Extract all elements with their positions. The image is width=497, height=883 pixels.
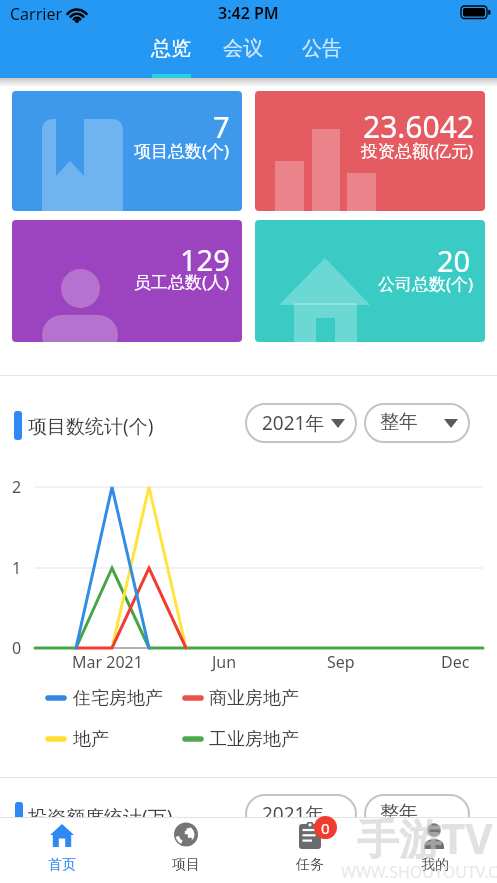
- staticText: 商业房地产: [209, 687, 299, 710]
- staticText: 我的: [421, 856, 449, 874]
- staticText: 手游TV: [357, 809, 493, 859]
- staticText: 23.6042: [363, 106, 474, 147]
- button[interactable]: 首页: [0, 817, 124, 883]
- button[interactable]: [255, 220, 485, 342]
- staticText: 7: [213, 107, 230, 146]
- staticText: 0: [12, 637, 22, 659]
- staticText: 项目: [172, 856, 200, 874]
- button[interactable]: 总览: [131, 22, 211, 74]
- staticText: Sep: [327, 651, 355, 673]
- staticText: 129: [180, 240, 230, 279]
- staticText: Carrier: [10, 3, 63, 25]
- staticText: 3:42 PM: [218, 2, 279, 24]
- staticText: 地产: [73, 728, 109, 751]
- staticText: 首页: [48, 856, 76, 874]
- staticText: 员工总数(人): [134, 270, 230, 293]
- staticText: 整年: [380, 410, 418, 434]
- staticText: 2: [12, 476, 22, 498]
- button[interactable]: 会议: [203, 22, 283, 74]
- staticText: 投资总额(亿元): [361, 139, 474, 162]
- staticText: 会议: [223, 36, 263, 61]
- staticText: 项目数统计(个): [28, 413, 154, 439]
- staticText: 0: [321, 818, 330, 838]
- staticText: Jun: [212, 651, 237, 673]
- staticText: 2021年: [262, 801, 325, 827]
- button[interactable]: [255, 91, 485, 211]
- staticText: 住宅房地产: [73, 687, 163, 710]
- button[interactable]: 项目: [124, 817, 248, 883]
- staticText: 整年: [380, 801, 418, 825]
- staticText: WWW.SHOUYOUTV.COM: [341, 861, 497, 883]
- button[interactable]: 2021年: [245, 403, 357, 443]
- button[interactable]: 整年: [364, 403, 470, 443]
- staticText: 20: [437, 241, 471, 280]
- staticText: Mar 2021: [72, 651, 143, 673]
- button[interactable]: 我的: [372, 817, 497, 883]
- staticText: 项目总数(个): [134, 139, 230, 162]
- staticText: 2021年: [262, 410, 325, 436]
- staticText: 公告: [302, 36, 342, 61]
- staticText: 任务: [296, 856, 324, 874]
- staticText: 总览: [151, 36, 191, 61]
- staticText: 公司总数(个): [378, 272, 474, 295]
- button[interactable]: [12, 220, 242, 342]
- button[interactable]: 公告: [282, 22, 362, 74]
- button[interactable]: 0: [248, 817, 372, 883]
- staticText: 工业房地产: [209, 728, 299, 751]
- button[interactable]: [12, 91, 242, 211]
- staticText: Dec: [441, 651, 470, 673]
- staticText: 1: [12, 557, 22, 579]
- staticText: 投资额度统计(万): [28, 804, 173, 830]
